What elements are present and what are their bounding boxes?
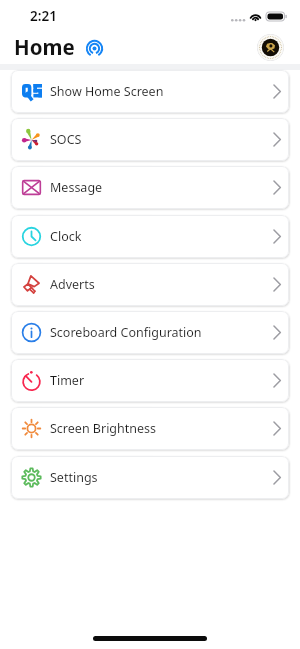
staticText: SOCS [50,131,82,148]
button[interactable]: SOCS [11,118,289,161]
staticText: Message [50,179,103,196]
staticText: Show Home Screen [50,83,164,100]
staticText: 2:21 [30,7,57,25]
button[interactable]: Settings [11,456,289,499]
button[interactable]: Scoreboard Configuration [11,311,289,354]
staticText: Settings [50,469,98,486]
staticText: Adverts [50,276,95,293]
button[interactable]: Profile [257,34,284,61]
button[interactable]: Screen Brightness [11,407,289,450]
staticText: Clock [50,228,82,245]
button[interactable]: Adverts [11,263,289,306]
staticText: Scoreboard Configuration [50,324,202,341]
staticText: Home [14,33,75,61]
button[interactable]: Show Home Screen [11,70,289,113]
button[interactable]: Timer [11,359,289,402]
button[interactable]: Clock [11,215,289,258]
button[interactable]: Message [11,166,289,209]
staticText: Screen Brightness [50,420,157,437]
staticText: Timer [50,372,85,389]
